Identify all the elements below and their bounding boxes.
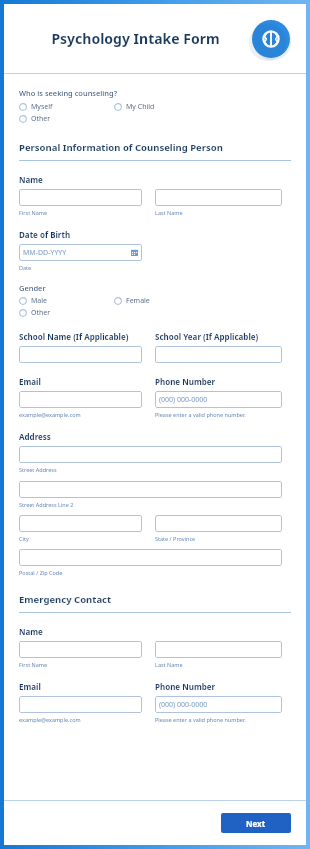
button[interactable]: Male: [19, 295, 48, 307]
staticText: State / Province: [155, 535, 196, 542]
staticText: School Name (If Applicable): [19, 331, 129, 342]
staticText: Who is seeking counseling?: [19, 88, 118, 98]
button[interactable]: [19, 549, 282, 566]
button[interactable]: [19, 446, 282, 463]
staticText: Street Address: [19, 466, 57, 473]
staticText: Male: [31, 296, 48, 306]
button[interactable]: MM-DD-YYYY: [19, 244, 142, 261]
staticText: School Year (If Applicable): [155, 331, 259, 342]
button[interactable]: [19, 391, 142, 408]
button[interactable]: Psychology logo: [252, 20, 290, 58]
staticText: Phone Number: [155, 376, 216, 387]
button[interactable]: My Child: [114, 101, 155, 113]
button[interactable]: [155, 189, 282, 206]
staticText: example@example.com: [19, 716, 81, 723]
staticText: City: [19, 535, 29, 542]
staticText: Last Name: [155, 661, 183, 668]
button[interactable]: Other: [19, 307, 51, 319]
staticText: MM-DD-YYYY: [23, 248, 67, 258]
staticText: Personal Information of Counseling Perso…: [19, 141, 223, 154]
staticText: My Child: [126, 102, 155, 112]
staticText: Please enter a valid phone number.: [155, 716, 246, 723]
button[interactable]: Other: [19, 113, 51, 125]
button[interactable]: (000) 000-0000: [155, 696, 282, 713]
staticText: example@example.com: [19, 411, 81, 418]
staticText: Next: [246, 818, 266, 829]
staticText: Name: [19, 174, 43, 185]
button[interactable]: [155, 515, 282, 532]
staticText: (000) 000-0000: [159, 700, 208, 710]
button[interactable]: [19, 481, 282, 498]
staticText: Psychology Intake Form: [51, 29, 220, 48]
staticText: Address: [19, 431, 51, 442]
staticText: First Name: [19, 661, 48, 668]
staticText: Street Address Line 2: [19, 501, 74, 508]
staticText: Other: [31, 114, 51, 124]
button[interactable]: [19, 189, 142, 206]
staticText: Date of Birth: [19, 229, 71, 240]
button[interactable]: Female: [114, 295, 150, 307]
staticText: Postal / Zip Code: [19, 569, 63, 576]
staticText: Phone Number: [155, 681, 216, 692]
staticText: Email: [19, 376, 41, 387]
staticText: Email: [19, 681, 41, 692]
staticText: Please enter a valid phone number.: [155, 411, 246, 418]
button[interactable]: [19, 346, 142, 363]
staticText: Gender: [19, 283, 46, 293]
button[interactable]: [19, 515, 142, 532]
button[interactable]: Myself: [19, 101, 53, 113]
staticText: Female: [126, 296, 150, 306]
button[interactable]: [19, 641, 142, 658]
button[interactable]: [155, 346, 282, 363]
staticText: Last Name: [155, 209, 183, 216]
button[interactable]: Next: [221, 813, 291, 833]
button[interactable]: [19, 696, 142, 713]
staticText: Emergency Contact: [19, 593, 112, 606]
staticText: Myself: [31, 102, 53, 112]
staticText: Date: [19, 264, 32, 271]
staticText: First Name: [19, 209, 48, 216]
staticText: Other: [31, 308, 51, 318]
staticText: (000) 000-0000: [159, 395, 208, 405]
button[interactable]: [155, 641, 282, 658]
button[interactable]: (000) 000-0000: [155, 391, 282, 408]
staticText: Name: [19, 626, 43, 637]
